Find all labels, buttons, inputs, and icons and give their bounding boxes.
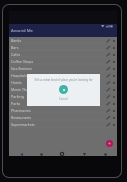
button[interactable]: Gas Stations — [9, 65, 117, 72]
staticText: Around Me — [11, 28, 33, 34]
button[interactable]: Coffee Shops — [9, 58, 117, 65]
staticText: Cancel — [59, 97, 68, 101]
button[interactable]: Hotels — [9, 79, 117, 86]
button[interactable]: Add — [106, 140, 113, 147]
staticText: Movie Theaters — [11, 87, 105, 92]
staticText: Parks — [11, 101, 105, 106]
button[interactable]: Around Me — [9, 24, 117, 37]
staticText: Pharmacies — [11, 108, 105, 113]
button[interactable]: Delete Gas Stations — [111, 66, 117, 72]
button[interactable]: Parking — [9, 93, 117, 100]
staticText: Hospitals — [11, 73, 105, 78]
button[interactable]: Edit Banks — [105, 38, 111, 44]
staticText: Hotels — [11, 80, 105, 85]
button[interactable]: Edit Gas Stations — [105, 66, 111, 72]
button[interactable]: Delete Parking — [111, 94, 117, 100]
button[interactable]: Edit Hotels — [105, 80, 111, 86]
button[interactable]: Edit Supermarkets — [105, 122, 111, 128]
button[interactable]: Home — [37, 150, 45, 158]
button[interactable]: Delete Supermarkets — [111, 122, 117, 128]
staticText: Restaurants — [11, 115, 105, 120]
button[interactable]: Edit Parks — [105, 101, 111, 107]
button[interactable]: Delete Restaurants — [111, 115, 117, 121]
button[interactable]: Supermarkets — [9, 121, 117, 128]
button[interactable]: Delete Banks — [111, 38, 117, 44]
button[interactable]: Restaurants — [9, 114, 117, 121]
button[interactable]: Bars — [9, 44, 117, 51]
staticText: Parking — [11, 94, 105, 99]
button[interactable]: Delete Coffee Shops — [111, 59, 117, 65]
button[interactable]: Edit Cafes — [105, 52, 111, 58]
button[interactable]: Movie Theaters — [9, 86, 117, 93]
button[interactable]: Edit Coffee Shops — [105, 59, 111, 65]
staticText: Tell us what kind of place you're lookin… — [34, 78, 93, 82]
button[interactable]: Delete Hospitals — [111, 73, 117, 79]
button[interactable]: Banks — [9, 37, 117, 44]
button[interactable]: Apps — [58, 150, 66, 158]
button[interactable]: Delete Pharmacies — [111, 108, 117, 114]
staticText: Bars — [11, 45, 105, 50]
button[interactable]: Edit Parking — [105, 94, 111, 100]
button[interactable]: Cancel — [55, 96, 72, 102]
staticText: Coffee Shops — [11, 59, 105, 64]
staticText: Banks — [11, 38, 105, 43]
button[interactable]: Edit Restaurants — [105, 115, 111, 121]
staticText: Gas Stations — [11, 66, 105, 71]
button[interactable]: Back — [17, 150, 25, 158]
button[interactable]: Recents — [101, 150, 109, 158]
button[interactable]: Parks — [9, 100, 117, 107]
staticText: Supermarkets — [11, 122, 105, 127]
button[interactable]: Edit Pharmacies — [105, 108, 111, 114]
button[interactable]: Delete Bars — [111, 45, 117, 51]
button[interactable]: Pharmacies — [9, 107, 117, 114]
button[interactable]: Edit Bars — [105, 45, 111, 51]
button[interactable]: Delete Movie Theaters — [111, 87, 117, 93]
button[interactable]: Delete Parks — [111, 101, 117, 107]
staticText: Cafes — [11, 52, 105, 57]
button[interactable]: Collapse — [80, 150, 88, 158]
button[interactable]: Cafes — [9, 51, 117, 58]
button[interactable]: Delete Hotels — [111, 80, 117, 86]
button[interactable]: Delete Cafes — [111, 52, 117, 58]
button[interactable]: Microphone — [59, 85, 68, 94]
button[interactable]: Hospitals — [9, 72, 117, 79]
button[interactable]: Edit Hospitals — [105, 73, 111, 79]
button[interactable]: Edit Movie Theaters — [105, 87, 111, 93]
